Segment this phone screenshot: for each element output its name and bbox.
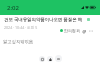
button[interactable]: 건보 국내유일의약품이나오면 품질은 해외서5공장이면 한국은어때요? <box>4 16 90 22</box>
button[interactable]: 한의협회 <box>60 28 80 33</box>
button[interactable]: More <box>55 55 62 62</box>
button[interactable]: More options <box>89 29 93 33</box>
staticText: 2024 · 10:44 · 조회 5 <box>4 25 38 30</box>
staticText: 2:02 <box>7 4 19 12</box>
button[interactable]: Share <box>82 29 86 33</box>
button[interactable]: Save <box>39 56 45 62</box>
staticText: 건보 국내유일의약품이나오면 품질은 해외서5공장이면 한국은어때요? <box>4 16 86 22</box>
staticText: 한의협회 <box>64 28 80 33</box>
staticText: 알고싶지않았음 <box>3 39 34 44</box>
button[interactable]: Like <box>47 56 53 62</box>
